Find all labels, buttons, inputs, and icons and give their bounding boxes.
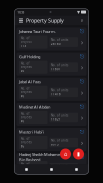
staticText: No. of units — [51, 38, 68, 42]
staticText: 10:8 — [17, 9, 24, 15]
staticText: 46 — [20, 145, 24, 148]
staticText: No. of projects — [20, 162, 31, 169]
staticText: Johanna Tauri Fourm. — [19, 29, 56, 34]
staticText: 46 — [20, 69, 24, 73]
staticText: ⎋ — [80, 79, 84, 84]
staticText: ⌕ — [80, 18, 83, 23]
staticText: › — [81, 138, 83, 147]
staticText: No. of projects — [20, 112, 31, 119]
staticText: › — [81, 113, 83, 122]
staticText: 11418 — [51, 93, 61, 96]
staticText: Hadeej Sheikh Mohammed Bin Rasheed — [19, 152, 66, 162]
staticText: Madinat Al Abdan — [19, 104, 50, 109]
staticText: 6013 — [51, 143, 59, 146]
staticText: Jabal Al Faas — [19, 79, 41, 84]
staticText: 113 — [20, 44, 26, 48]
button[interactable]: Add unit — [72, 147, 85, 160]
staticText: No. of units — [51, 63, 68, 67]
staticText: › — [81, 88, 83, 97]
button[interactable]: Search — [78, 16, 86, 24]
staticText: › — [81, 63, 83, 72]
staticText: No. of units — [51, 139, 68, 142]
staticText: 46 — [20, 94, 24, 98]
staticText: 11801 — [51, 67, 61, 71]
button[interactable]: Home — [39, 164, 64, 174]
button[interactable]: Menu — [17, 16, 25, 24]
staticText: Property Supply — [26, 17, 64, 24]
staticText: No. of projects — [20, 137, 31, 144]
staticText: ⎋ — [80, 129, 84, 135]
staticText: No. of projects — [20, 87, 31, 94]
staticText: ⌂ — [64, 151, 67, 157]
button[interactable]: Masteri Habi'i — [16, 128, 86, 151]
staticText: No. of units — [51, 88, 68, 92]
staticText: No. of units — [51, 114, 68, 117]
staticText: 28180 — [51, 42, 61, 46]
staticText: ⎋ — [80, 154, 84, 160]
staticText: ▼ — [77, 10, 80, 14]
staticText: 9100 — [51, 168, 59, 171]
staticText: 11821 — [51, 118, 61, 121]
button[interactable]: Jabal Al Faas — [16, 78, 86, 101]
staticText: Gulf Holding — [19, 54, 40, 59]
button[interactable]: Hadeej Sheikh Mohammed Bin Rasheed — [16, 153, 86, 176]
button[interactable]: Gulf Holding — [16, 53, 86, 76]
staticText: ▮ — [77, 151, 80, 157]
staticText: 46 — [20, 119, 24, 123]
staticText: No. of projects — [20, 36, 31, 44]
staticText: ⎋ — [80, 29, 84, 34]
button[interactable]: Johanna Tauri Fourm. — [16, 27, 86, 51]
button[interactable]: Madinat Al Abdan — [16, 103, 86, 126]
staticText: ⎋ — [80, 104, 84, 109]
button[interactable]: Add property — [59, 147, 72, 160]
staticText: › — [81, 38, 83, 46]
staticText: ⎋ — [80, 54, 84, 59]
button[interactable]: Back — [14, 164, 39, 174]
button[interactable]: Recents — [64, 164, 89, 174]
staticText: No. of projects — [20, 62, 31, 69]
staticText: Masteri Habi'i — [19, 129, 44, 135]
